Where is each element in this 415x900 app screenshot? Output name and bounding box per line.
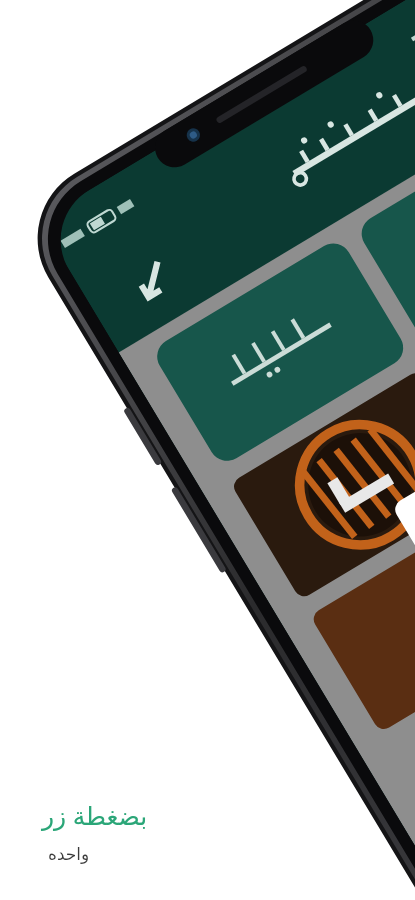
staticText: واحده <box>48 844 90 864</box>
button[interactable]: بضغطة زر <box>42 798 148 864</box>
button[interactable]: App preview on phone <box>0 0 415 900</box>
staticText: بضغطة زر <box>42 798 148 832</box>
